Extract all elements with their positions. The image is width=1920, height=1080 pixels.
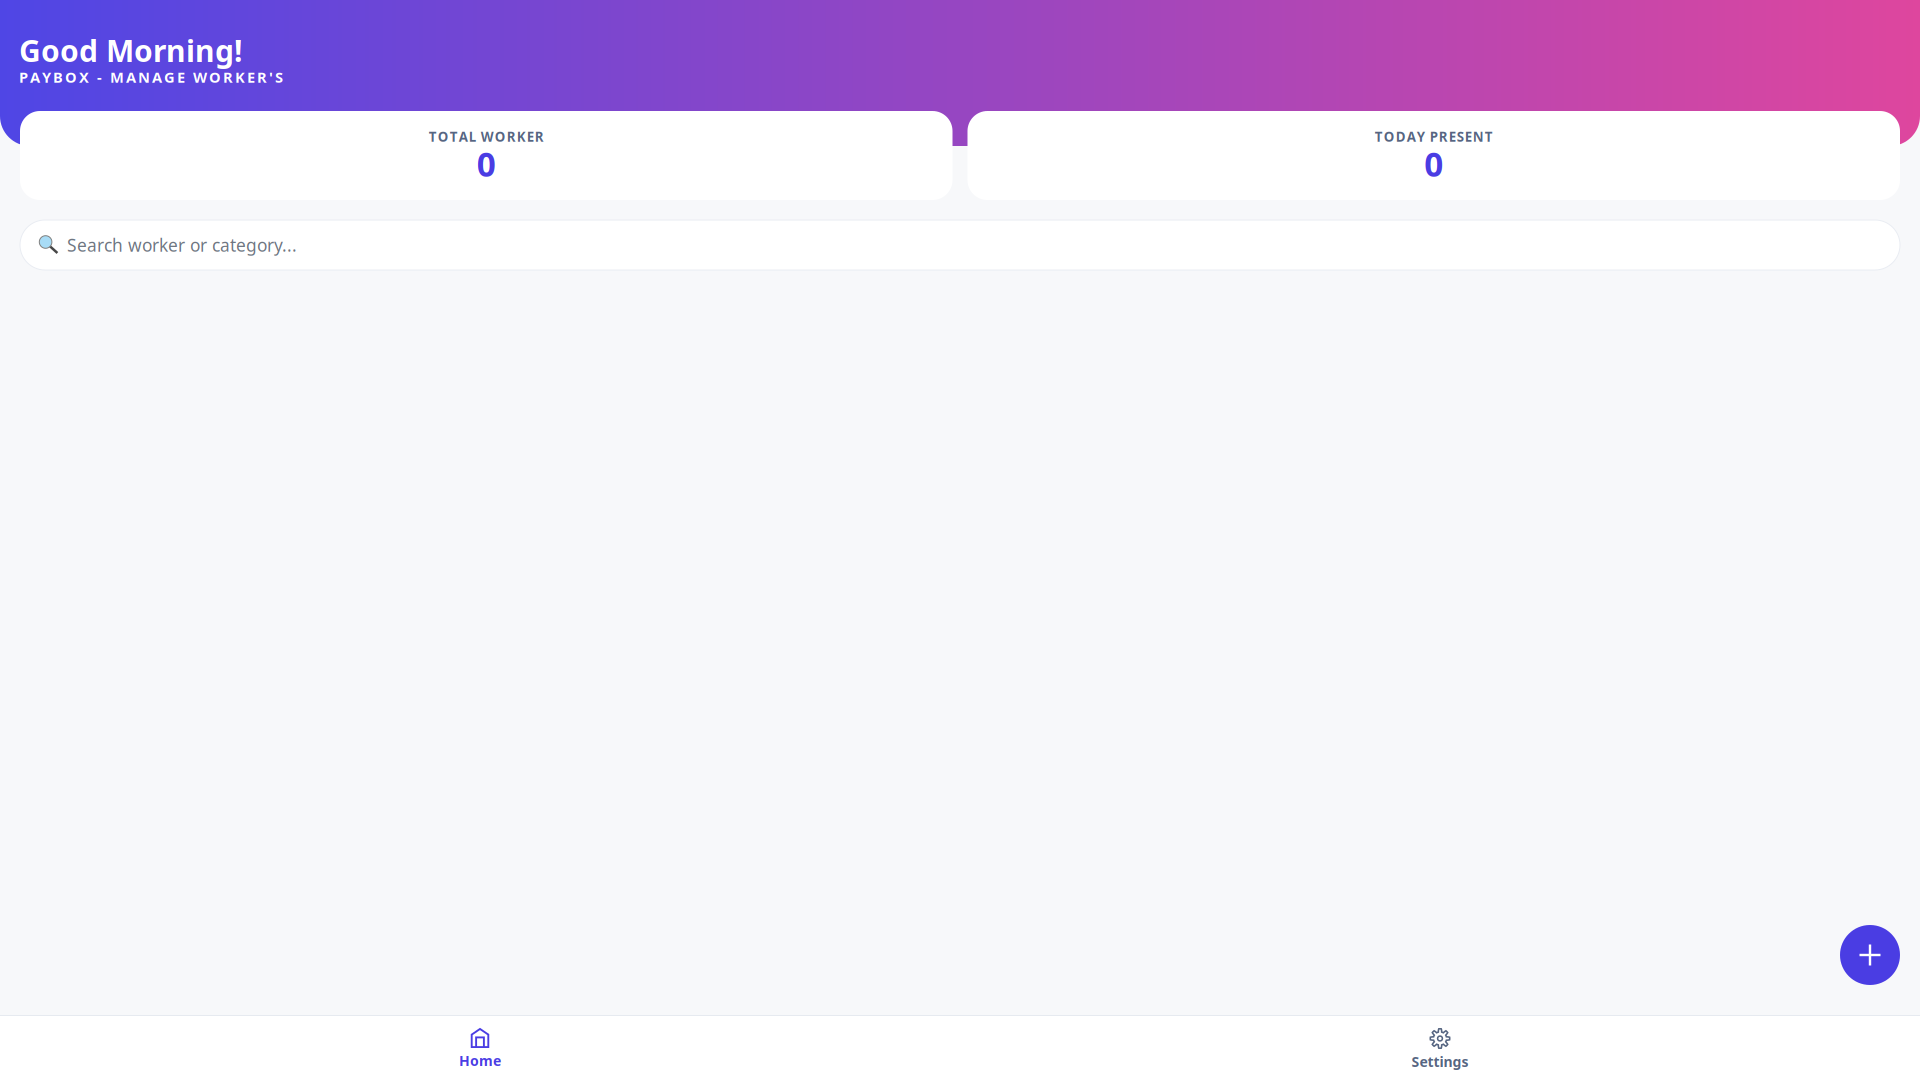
staticText: P A Y B O X - M A N A G E W O R K E R ' … (19, 67, 283, 87)
button[interactable]: Settings (960, 1016, 1920, 1080)
button[interactable]: T O T A L W O R K E R (20, 111, 952, 200)
button[interactable]: Add worker (1840, 925, 1900, 985)
staticText: T O T A L W O R K E R (429, 127, 544, 146)
staticText: 0 (1424, 141, 1443, 186)
staticText: Settings (1411, 1052, 1468, 1071)
staticText: T O D A Y P R E S E N T (1375, 127, 1493, 146)
staticText: Home (459, 1051, 501, 1070)
staticText: 0 (477, 141, 496, 186)
staticText: Search worker or category... (67, 233, 297, 257)
button[interactable]: Home (0, 1016, 960, 1080)
button[interactable]: Search worker or category... (20, 220, 1900, 270)
button[interactable]: T O D A Y P R E S E N T (967, 111, 1900, 200)
staticText: Good Morning! (19, 30, 242, 71)
